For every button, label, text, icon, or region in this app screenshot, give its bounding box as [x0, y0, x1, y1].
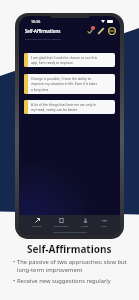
- staticText: Exercise: [32, 224, 42, 227]
- button[interactable]: I am glad that I took the chance to use …: [24, 53, 115, 67]
- button[interactable]: More: [101, 218, 107, 227]
- staticText: Change is possible, I have the ability t…: [31, 76, 98, 92]
- staticText: More: [101, 224, 107, 227]
- button[interactable]: affirmations: [54, 218, 68, 227]
- staticText: •: [13, 258, 16, 266]
- staticText: Read these out loud to yourself!: [25, 37, 61, 40]
- button[interactable]: Change is possible, I have the ability t…: [24, 74, 115, 94]
- staticText: Self-Affirmations: [25, 28, 61, 34]
- staticText: I am glad that I took the chance to use …: [31, 55, 98, 65]
- staticText: Receive new suggestions regularly: [17, 277, 111, 285]
- staticText: •: [13, 277, 16, 285]
- button[interactable]: Account: [108, 27, 116, 35]
- staticText: Profile: [81, 224, 89, 227]
- staticText: affirmations: [54, 224, 68, 227]
- staticText: The passive of two approaches; slow but …: [17, 258, 131, 274]
- staticText: A lot of the things that limit me are on…: [31, 102, 98, 112]
- button[interactable]: Edit: [97, 27, 105, 35]
- button[interactable]: Exercise: [32, 218, 42, 227]
- button[interactable]: Profile: [81, 218, 89, 227]
- button[interactable]: Notifications: [86, 27, 94, 35]
- staticText: Self-Affirmations: [27, 242, 112, 256]
- staticText: 10:36: [31, 19, 41, 24]
- button[interactable]: A lot of the things that limit me are on…: [24, 100, 115, 114]
